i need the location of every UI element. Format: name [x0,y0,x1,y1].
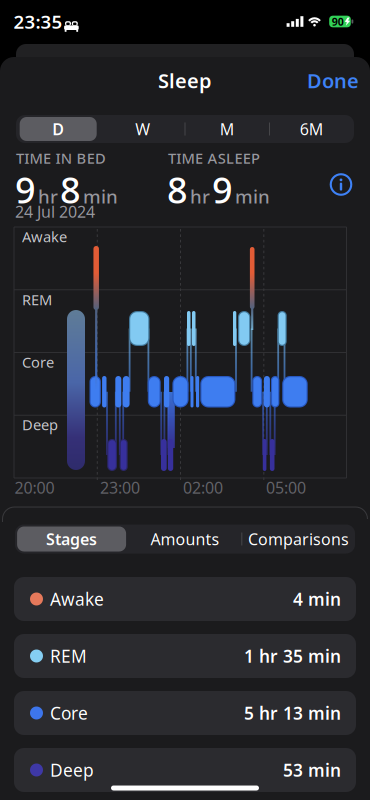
staticText: TIME IN BED [16,148,106,168]
button[interactable]: Comparisons [243,526,353,551]
staticText: Core [22,352,54,372]
staticText: 23:35 [13,9,62,34]
button[interactable]: Awake [0,0,370,800]
staticText: REM [50,644,87,667]
staticText: 53 min [283,758,341,781]
staticText: 23:00 [100,477,140,498]
staticText: Awake [50,587,104,610]
button[interactable]: 6M [272,117,352,141]
staticText: Amounts [150,528,219,550]
staticText: 02:00 [183,477,223,498]
staticText: 8 [60,166,81,213]
staticText: Awake [22,227,67,246]
staticText: Deep [50,758,94,781]
button[interactable]: Core [0,0,370,800]
button[interactable]: M [187,117,267,141]
staticText: REM [22,290,52,309]
staticText: Sleep [158,67,212,94]
button[interactable]: About Sleep [330,173,352,195]
staticText: W [135,118,150,140]
button[interactable]: Done [307,67,359,94]
staticText: 4 min [293,587,341,610]
staticText: 5 hr 13 min [244,701,341,724]
staticText: Stages [46,528,97,550]
staticText: 6M [300,118,324,140]
staticText: D [52,118,64,140]
staticText: 8 [167,166,188,213]
staticText: hr [190,184,210,209]
staticText: Done [307,67,359,94]
staticText: Core [50,701,88,724]
staticText: 9 [15,166,36,213]
button[interactable]: Amounts [130,526,240,551]
button[interactable]: Deep [0,0,370,800]
button[interactable]: W [103,117,183,141]
staticText: 24 Jul 2024 [15,201,95,222]
staticText: 20:00 [14,477,54,498]
staticText: 90 [332,14,344,29]
staticText: min [235,184,270,209]
staticText: TIME ASLEEP [168,148,260,168]
staticText: Deep [22,415,58,434]
staticText: 05:00 [266,477,306,498]
staticText: hr [38,184,58,209]
button[interactable]: REM [0,0,370,800]
staticText: M [220,118,235,140]
staticText: Comparisons [248,528,349,550]
staticText: min [83,184,118,209]
button[interactable]: D [20,117,97,141]
button[interactable]: Stages [17,526,126,551]
staticText: 9 [212,166,233,213]
staticText: 1 hr 35 min [244,644,341,667]
